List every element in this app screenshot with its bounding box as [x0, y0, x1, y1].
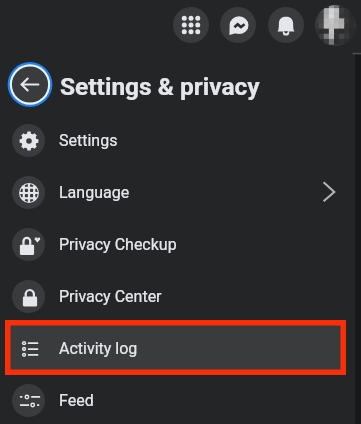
- staticText: Settings & privacy: [60, 72, 260, 101]
- button[interactable]: Activity log: [0, 322, 361, 374]
- button[interactable]: Feed: [0, 374, 361, 424]
- button[interactable]: Language: [0, 166, 361, 218]
- button[interactable]: Privacy Checkup: [0, 218, 361, 270]
- button[interactable]: Privacy Center: [0, 270, 361, 322]
- button[interactable]: Settings: [0, 114, 361, 166]
- button[interactable]: Menu: [173, 7, 209, 43]
- staticText: Feed: [59, 391, 94, 410]
- staticText: Settings: [59, 131, 118, 150]
- staticText: Privacy Checkup: [59, 235, 177, 254]
- staticText: Privacy Center: [59, 287, 162, 306]
- button[interactable]: Back: [7, 62, 53, 107]
- staticText: Activity log: [59, 339, 138, 358]
- button[interactable]: Your profile: [315, 5, 356, 46]
- button[interactable]: Messenger: [220, 7, 256, 43]
- staticText: Language: [59, 183, 130, 202]
- button[interactable]: Notifications: [268, 7, 304, 43]
